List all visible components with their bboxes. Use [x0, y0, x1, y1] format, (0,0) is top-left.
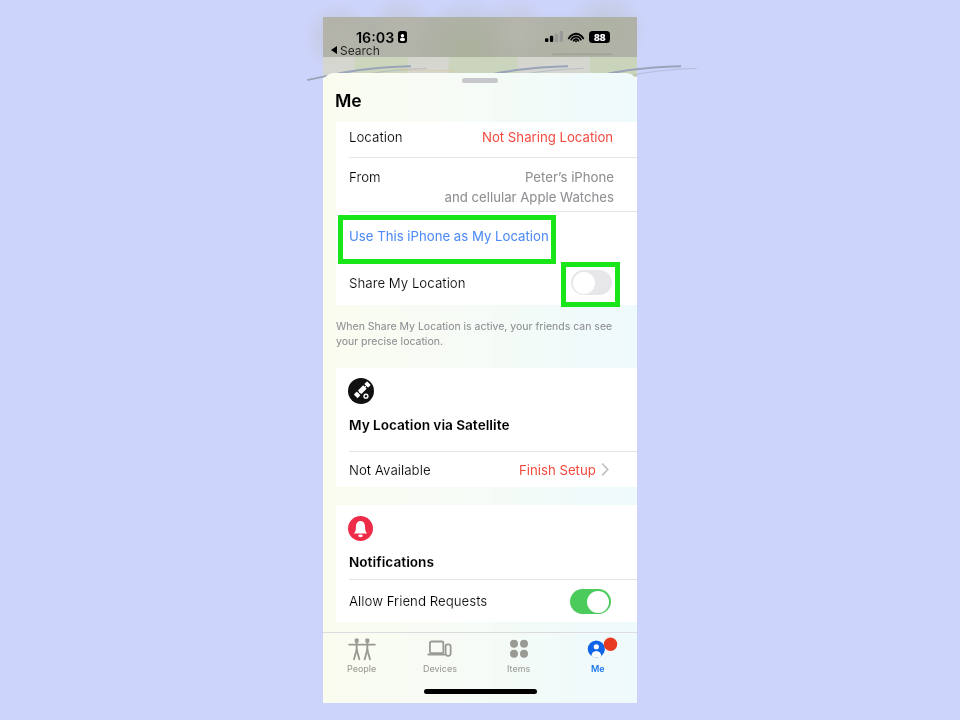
- button[interactable]: People: [323, 633, 401, 674]
- staticText: Peter’s iPhone: [525, 169, 614, 185]
- staticText: Share My Location: [349, 275, 466, 291]
- staticText: 16:03: [356, 29, 395, 44]
- button[interactable]: Items: [479, 633, 558, 674]
- staticText: Not Sharing Location: [482, 129, 614, 145]
- staticText: Not Available: [349, 462, 431, 478]
- staticText: Finish Setup: [519, 462, 596, 478]
- staticText: 88: [594, 32, 606, 43]
- staticText: and cellular Apple Watches: [349, 189, 614, 205]
- staticText: My Location via Satellite: [349, 417, 510, 433]
- staticText: Use This iPhone as My Location: [349, 228, 549, 244]
- button[interactable]: Me: [558, 633, 637, 674]
- staticText: When Share My Location is active, your f…: [336, 320, 614, 347]
- button[interactable]: Use This iPhone as My Location: [336, 212, 637, 260]
- staticText: Allow Friend Requests: [349, 593, 488, 609]
- staticText: Search: [340, 43, 380, 56]
- button[interactable]: Not Available: [336, 452, 637, 487]
- staticText: Me: [591, 663, 605, 674]
- staticText: People: [347, 663, 377, 674]
- staticText: Items: [507, 663, 531, 674]
- button[interactable]: Share my location, off: [571, 270, 612, 295]
- staticText: Notifications: [349, 554, 435, 570]
- button[interactable]: Devices: [401, 633, 479, 674]
- staticText: Devices: [423, 663, 457, 674]
- button[interactable]: Location: [336, 122, 637, 157]
- staticText: Location: [349, 129, 403, 145]
- button[interactable]: Allow friend requests, on: [570, 589, 611, 614]
- staticText: Me: [335, 90, 362, 111]
- staticText: From: [349, 169, 381, 185]
